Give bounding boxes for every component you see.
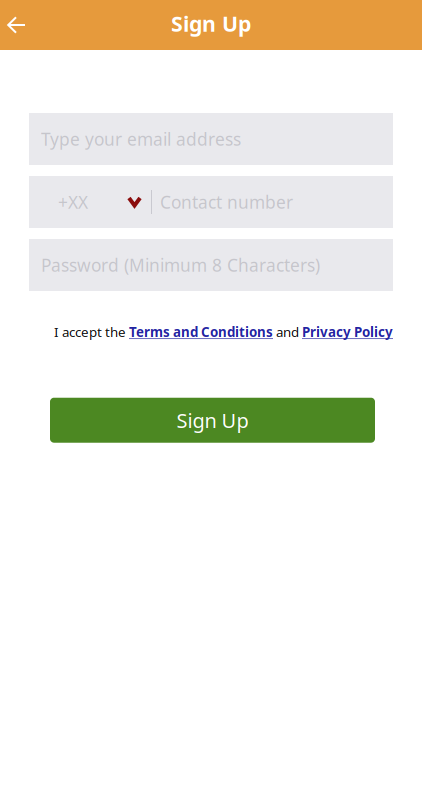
staticText: Sign Up [171,9,251,38]
button[interactable]: Privacy Policy [302,323,393,341]
staticText: and [273,323,302,341]
staticText: Password (Minimum 8 Characters) [41,253,320,276]
staticText: Terms and Conditions [129,323,273,341]
button[interactable]: Type your email address [29,113,393,165]
staticText: Contact number [160,190,293,213]
staticText: Privacy Policy [302,323,393,341]
staticText: Type your email address [41,127,241,150]
button[interactable]: Sign Up [50,398,375,443]
button[interactable]: Back [0,0,48,50]
staticText: +XX [58,190,88,213]
staticText: I accept the [54,323,129,341]
button[interactable]: Password (Minimum 8 Characters) [29,239,393,291]
button[interactable]: Terms and Conditions [129,323,273,341]
button[interactable]: Select country code [58,176,142,228]
staticText: Sign Up [176,407,248,433]
button[interactable]: Contact number [152,176,393,228]
